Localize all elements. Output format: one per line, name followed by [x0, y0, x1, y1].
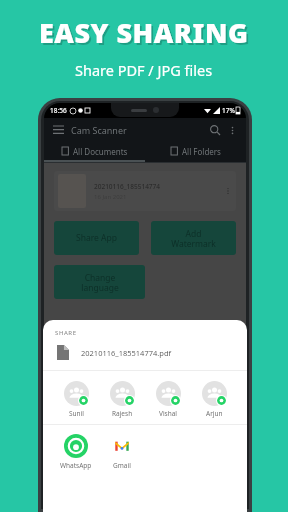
staticText: 20210116_185514774 [94, 182, 161, 191]
button[interactable]: Gmail [99, 434, 145, 470]
staticText: Gmail [113, 461, 131, 470]
button[interactable]: All Documents [44, 142, 145, 162]
button[interactable]: Arjun [191, 381, 237, 418]
button[interactable]: Menu [52, 124, 65, 137]
staticText: All Documents [73, 146, 128, 157]
staticText: Change language [81, 272, 119, 293]
staticText: Share App [76, 232, 117, 244]
staticText: 17% [222, 106, 235, 115]
staticText: Share PDF / JPG files [75, 60, 213, 80]
staticText: Rajesh [112, 409, 133, 418]
button[interactable]: Change language [54, 265, 145, 299]
staticText: All Folders [182, 146, 221, 157]
button[interactable]: Vishal [145, 381, 191, 418]
button[interactable]: Add Watermark [151, 221, 236, 255]
staticText: Add Watermark [171, 228, 216, 249]
button[interactable]: Rajesh [99, 381, 145, 418]
staticText: 18:56 [50, 106, 67, 115]
button[interactable]: 20210116_185514774 [54, 171, 236, 211]
staticText: EASY SHARING [41, 16, 251, 53]
button[interactable]: Search [208, 123, 222, 137]
staticText: WhatsApp [60, 461, 92, 470]
staticText: SHARE [55, 329, 77, 337]
button[interactable]: Sunil [53, 381, 99, 418]
button[interactable]: 20210116_185514774.pdf [43, 345, 247, 360]
button[interactable]: WhatsApp [53, 434, 99, 470]
button[interactable]: All Folders [145, 142, 246, 162]
staticText: Arjun [206, 409, 223, 418]
staticText: Cam Scanner [71, 124, 127, 136]
staticText: 20210116_185514774.pdf [81, 348, 172, 358]
staticText: Sunil [69, 409, 84, 418]
staticText: EASY SHARING [39, 14, 249, 51]
staticText: Vishal [159, 409, 178, 418]
button[interactable]: More options [226, 124, 238, 136]
